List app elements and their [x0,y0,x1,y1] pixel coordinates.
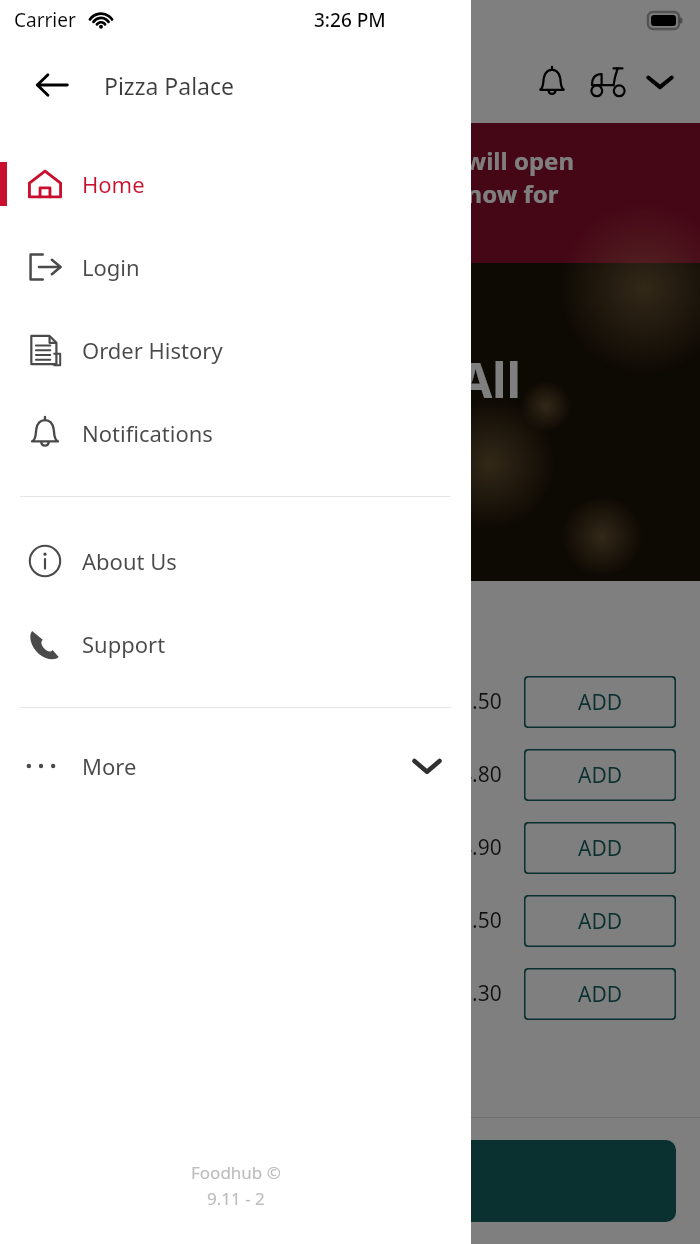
button[interactable]: Delivery [580,54,636,110]
staticText: About Us [82,546,177,576]
staticText: ADD [578,761,623,790]
staticText: Pizza Palace [104,70,235,101]
staticText: Notifications [82,418,213,448]
staticText: Support [82,629,166,659]
button[interactable]: Home [0,142,471,225]
button[interactable]: Notifications [524,54,580,110]
staticText: £8.50 [448,687,502,716]
staticText: £6.30 [448,979,502,1008]
staticText: Carrier [14,7,76,33]
button[interactable]: Support [0,602,471,685]
button[interactable]: ADD [524,968,676,1020]
staticText: Margherita Pizza [24,687,448,716]
button[interactable]: VIEW BASKET [24,1140,676,1222]
staticText: 3:26 PM [314,7,386,33]
button[interactable]: More [0,730,471,802]
staticText: Order History [82,335,223,365]
staticText: Home [82,169,145,199]
staticText: £4.90 [448,833,502,862]
button[interactable]: Notifications [0,391,471,474]
button[interactable]: Back [20,53,84,117]
button[interactable]: Login [0,225,471,308]
staticText: ADD [578,688,623,717]
staticText: 20% Off On All Orders. [179,347,521,477]
button[interactable]: About Us [0,519,471,602]
staticText: Margherita Pizza [24,760,448,789]
staticText: £3.50 [448,906,502,935]
staticText: Login [82,252,140,282]
staticText: £4.80 [448,760,502,789]
staticText: ADD [578,980,623,1009]
staticText: ADD [578,834,623,863]
button[interactable]: Order History [0,308,471,391]
staticText: 9.11 - 2 [207,1187,265,1210]
button[interactable]: ADD [524,676,676,728]
button[interactable]: ADD [524,895,676,947]
button[interactable]: ADD [524,822,676,874]
staticText: We are currently closed and will open at… [127,144,574,243]
button[interactable]: ADD [524,749,676,801]
staticText: More [82,751,137,781]
button[interactable]: Expand [636,58,684,106]
staticText: ADD [578,907,623,936]
staticText: Foodhub © [191,1161,281,1184]
